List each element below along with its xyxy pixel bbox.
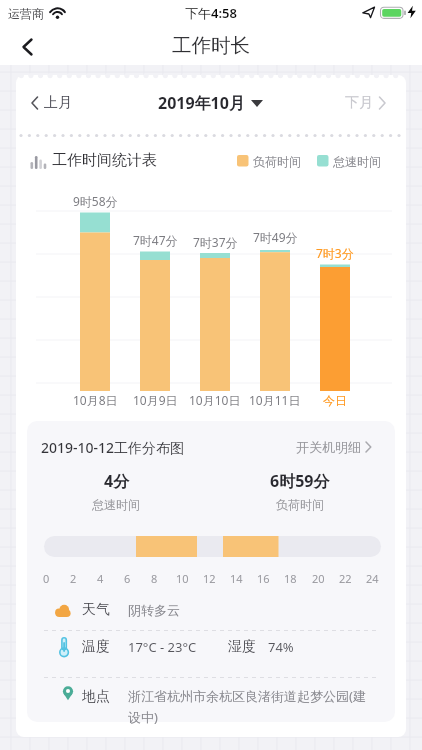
- staticText: 6时59分: [270, 470, 330, 492]
- staticText: 负荷时间: [253, 154, 301, 169]
- staticText: 22: [339, 571, 352, 586]
- staticText: 10: [176, 571, 189, 586]
- staticText: 负荷时间: [276, 497, 324, 512]
- staticText: 阴转多云: [128, 602, 180, 618]
- staticText: 24: [366, 571, 379, 586]
- staticText: 地点: [82, 688, 110, 706]
- staticText: 7时37分: [193, 234, 238, 250]
- staticText: 20: [312, 571, 325, 586]
- staticText: 7时3分: [316, 245, 354, 261]
- staticText: 2019年10月: [158, 92, 245, 114]
- staticText: 温度: [82, 638, 110, 656]
- staticText: 下午4:58: [185, 4, 237, 22]
- staticText: 怠速时间: [92, 497, 140, 512]
- staticText: 12: [203, 571, 216, 586]
- staticText: 10月10日: [189, 392, 241, 408]
- staticText: 运营商: [8, 6, 44, 21]
- staticText: 8: [151, 571, 158, 586]
- staticText: 6: [124, 571, 131, 586]
- staticText: 0: [43, 571, 50, 586]
- staticText: 今日: [323, 393, 347, 408]
- button[interactable]: 开关机明细: [270, 433, 372, 461]
- staticText: 4分: [104, 470, 130, 492]
- staticText: 工作时长: [172, 33, 250, 58]
- staticText: 7时49分: [253, 229, 298, 245]
- staticText: 下月: [345, 94, 373, 112]
- staticText: 16: [257, 571, 270, 586]
- button[interactable]: 下月: [332, 89, 390, 117]
- staticText: 2019-10-12工作分布图: [41, 438, 185, 457]
- staticText: 74%: [268, 638, 294, 656]
- staticText: 10月11日: [249, 392, 301, 408]
- button[interactable]: 上月: [26, 89, 82, 117]
- staticText: 怠速时间: [333, 154, 381, 169]
- staticText: 10月9日: [133, 392, 178, 408]
- staticText: 18: [284, 571, 297, 586]
- staticText: 上月: [44, 94, 72, 112]
- staticText: 2: [70, 571, 77, 586]
- staticText: 14: [230, 571, 243, 586]
- staticText: 工作时间统计表: [52, 151, 157, 170]
- staticText: 9时58分: [73, 193, 118, 209]
- button[interactable]: [8, 29, 46, 65]
- staticText: 7时47分: [133, 232, 178, 248]
- staticText: 4: [97, 571, 104, 586]
- staticText: 浙江省杭州市余杭区良渚街道起梦公园(建设中): [128, 687, 378, 726]
- staticText: 17°C - 23°C: [128, 638, 197, 656]
- staticText: 湿度: [228, 638, 256, 656]
- button[interactable]: 2019年10月: [145, 86, 275, 120]
- staticText: 10月8日: [73, 392, 118, 408]
- staticText: 开关机明细: [296, 439, 361, 455]
- staticText: 天气: [82, 601, 110, 619]
